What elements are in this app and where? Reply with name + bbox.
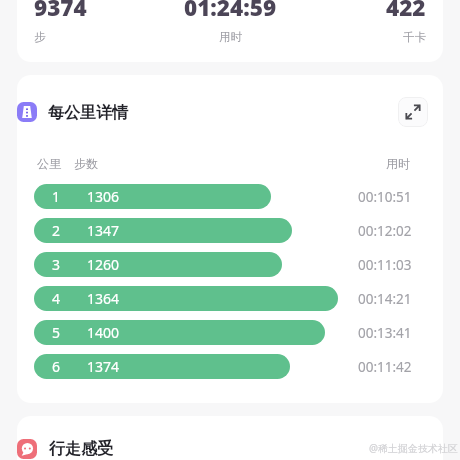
staticText: 00:10:51: [358, 188, 412, 206]
staticText: 1260: [87, 255, 120, 274]
button[interactable]: 5: [34, 320, 325, 345]
button[interactable]: Walking feelings: [17, 439, 113, 459]
staticText: 公里: [37, 156, 61, 171]
button[interactable]: 1: [34, 184, 271, 209]
staticText: 1364: [87, 289, 120, 308]
button[interactable]: 2: [34, 218, 292, 243]
staticText: 用时: [219, 30, 242, 44]
staticText: 00:13:41: [358, 324, 412, 342]
staticText: 00:12:02: [358, 222, 412, 240]
staticText: 千卡: [403, 30, 426, 44]
staticText: 00:11:03: [358, 256, 412, 274]
staticText: @稀土掘金技术社区: [369, 441, 458, 455]
staticText: 00:11:42: [358, 358, 412, 376]
staticText: 1306: [87, 187, 120, 206]
other: Per kilometre details: [17, 102, 37, 122]
staticText: 1400: [87, 323, 120, 342]
staticText: 1374: [87, 357, 120, 376]
button[interactable]: 9374: [17, 0, 443, 62]
other: Walking feelings: [17, 439, 37, 459]
staticText: 5: [52, 323, 61, 342]
staticText: 步数: [74, 156, 98, 171]
staticText: 9374: [34, 0, 87, 23]
staticText: 1347: [87, 221, 120, 240]
staticText: 3: [52, 255, 61, 274]
staticText: 6: [52, 357, 61, 376]
button[interactable]: 6: [34, 354, 290, 379]
staticText: 4: [52, 289, 61, 308]
staticText: 行走感受: [49, 439, 113, 459]
staticText: 1: [52, 187, 61, 206]
button[interactable]: 3: [34, 252, 282, 277]
staticText: 步: [34, 30, 46, 44]
button[interactable]: 4: [34, 286, 338, 311]
staticText: 2: [52, 221, 61, 240]
button[interactable]: Expand: [398, 97, 428, 127]
staticText: 00:14:21: [358, 290, 412, 308]
staticText: 每公里详情: [48, 103, 128, 123]
staticText: 422: [386, 0, 426, 23]
staticText: 01:24:59: [184, 0, 277, 23]
staticText: 用时: [386, 156, 410, 171]
button[interactable]: Per kilometre details: [17, 103, 128, 123]
